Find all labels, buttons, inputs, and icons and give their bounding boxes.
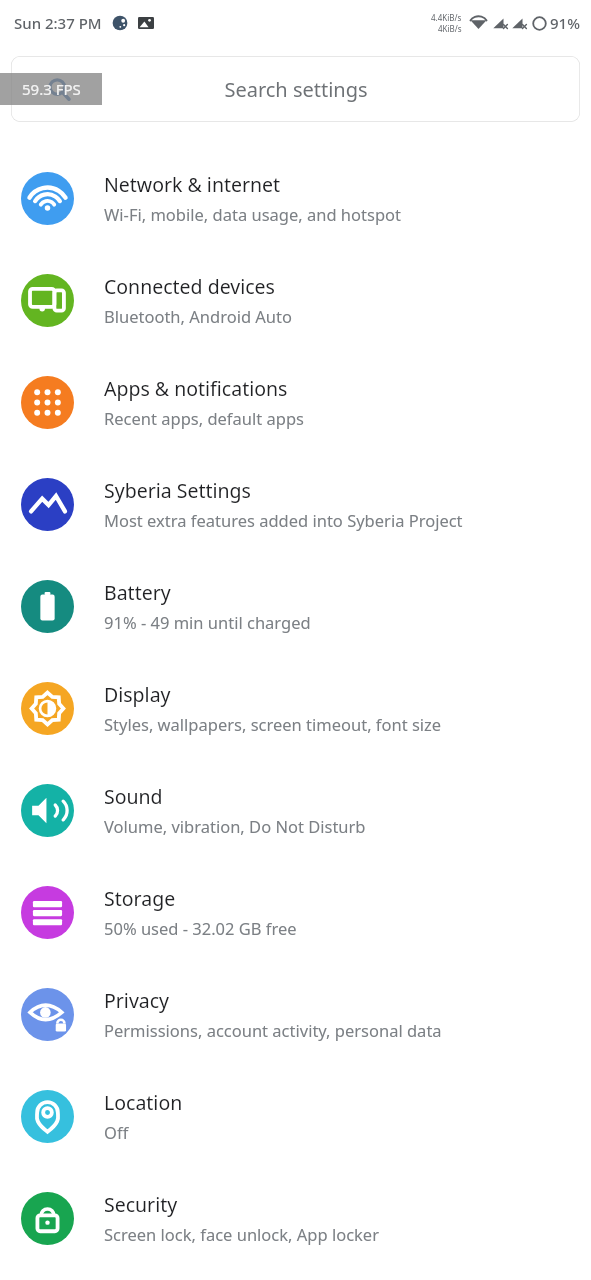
staticText: Sun 2:37 PM [14, 13, 102, 33]
staticText: Storage [104, 885, 176, 912]
staticText: 50% used - 32.02 GB free [104, 917, 297, 939]
button[interactable]: Sound [0, 759, 591, 861]
button[interactable]: Network & internet [0, 147, 591, 249]
staticText: 91% - 49 min until charged [104, 611, 311, 633]
staticText: Privacy [104, 987, 170, 1014]
staticText: Display [104, 681, 171, 708]
button[interactable]: Search [11, 56, 580, 122]
staticText: Battery [104, 579, 171, 606]
staticText: Off [104, 1121, 129, 1143]
staticText: Syberia Settings [104, 477, 251, 504]
staticText: Search settings [224, 76, 368, 103]
button[interactable]: Connected devices [0, 249, 591, 351]
staticText: Connected devices [104, 273, 275, 300]
staticText: Permissions, account activity, personal … [104, 1019, 442, 1041]
staticText: 59.3 FPS [22, 79, 81, 99]
staticText: Security [104, 1191, 178, 1218]
staticText: 4.4KiB/s [431, 12, 462, 23]
staticText: Recent apps, default apps [104, 407, 304, 429]
button[interactable]: Security [0, 1167, 591, 1269]
button[interactable]: Storage [0, 861, 591, 963]
button[interactable]: Battery [0, 555, 591, 657]
button[interactable]: Location [0, 1065, 591, 1167]
staticText: Most extra features added into Syberia P… [104, 509, 463, 531]
staticText: Wi-Fi, mobile, data usage, and hotspot [104, 203, 401, 225]
button[interactable]: Apps & notifications [0, 351, 591, 453]
staticText: Styles, wallpapers, screen timeout, font… [104, 713, 442, 735]
staticText: Location [104, 1089, 183, 1116]
button[interactable]: Syberia Settings [0, 453, 591, 555]
staticText: Apps & notifications [104, 375, 288, 402]
button[interactable]: Privacy [0, 963, 591, 1065]
other: Search [47, 77, 72, 102]
staticText: Network & internet [104, 171, 281, 198]
staticText: Bluetooth, Android Auto [104, 305, 293, 327]
staticText: 91% [550, 13, 580, 33]
staticText: Screen lock, face unlock, App locker [104, 1223, 379, 1245]
staticText: Volume, vibration, Do Not Disturb [104, 815, 366, 837]
staticText: 4KiB/s [438, 23, 462, 34]
staticText: Sound [104, 783, 163, 810]
button[interactable]: Display [0, 657, 591, 759]
